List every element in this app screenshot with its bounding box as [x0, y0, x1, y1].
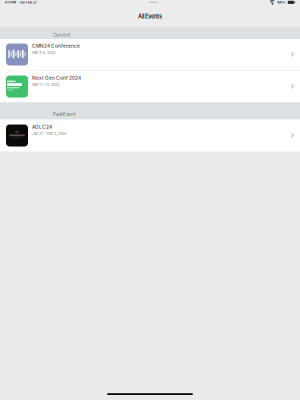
- staticText: Mar 11–13, 2024: [32, 82, 59, 87]
- button[interactable]: AGLC24: [0, 119, 300, 151]
- staticText: Next Gen Conf 2024: [32, 75, 81, 81]
- staticText: 100%: [277, 0, 285, 4]
- staticText: Jan 27 – Feb 2, 2024: [32, 131, 66, 136]
- staticText: Current: [53, 32, 70, 38]
- button[interactable]: CMN24 Conference: [0, 39, 300, 70]
- staticText: Mar 4–6, 2024: [32, 50, 55, 55]
- staticText: AGLC24: [32, 124, 52, 130]
- staticText: All Events: [138, 13, 162, 20]
- button[interactable]: Multitasking controls: [143, 0, 163, 4]
- staticText: Past Event: [53, 111, 75, 117]
- button[interactable]: Next Gen Conf 2024: [0, 70, 300, 102]
- staticText: 6:11 PM Tue Feb 27: [5, 0, 37, 4]
- staticText: CMN24 Conference: [32, 43, 80, 49]
